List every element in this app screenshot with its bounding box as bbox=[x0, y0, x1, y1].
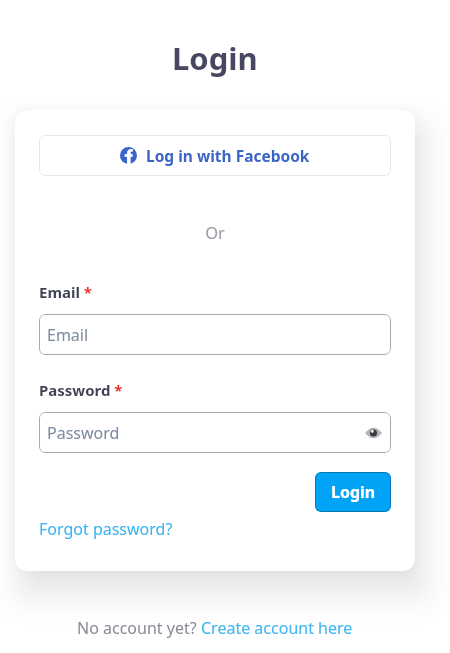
staticText: Log in with Facebook bbox=[146, 145, 310, 166]
staticText: No account yet? bbox=[77, 617, 201, 639]
button[interactable]: Forgot password? bbox=[39, 518, 173, 540]
staticText: Password bbox=[47, 422, 120, 444]
staticText: Login bbox=[331, 481, 376, 503]
staticText: Email bbox=[47, 324, 89, 346]
button[interactable]: Password bbox=[39, 412, 391, 453]
staticText: Login bbox=[172, 37, 258, 79]
staticText: Email * bbox=[39, 282, 92, 302]
button[interactable]: Email bbox=[39, 314, 391, 355]
button[interactable]: Create account here bbox=[201, 617, 353, 639]
staticText: Or bbox=[15, 221, 415, 243]
button[interactable]: Login bbox=[315, 472, 391, 512]
button[interactable]: Log in with Facebook bbox=[39, 135, 391, 176]
staticText: Password * bbox=[39, 380, 123, 400]
